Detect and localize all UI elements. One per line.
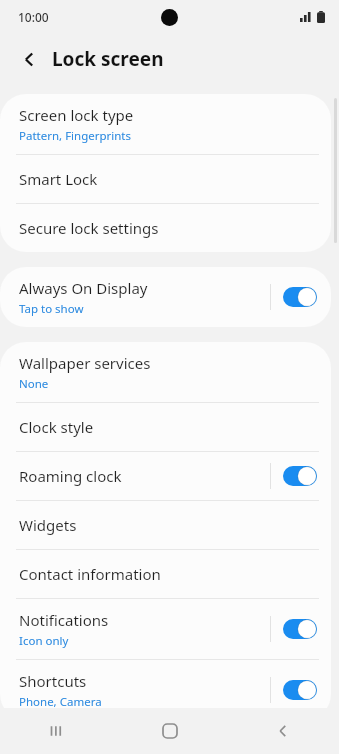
staticText: Pattern, Fingerprints	[19, 128, 132, 144]
button[interactable]: Notifications	[0, 599, 331, 659]
staticText: Smart Lock	[19, 169, 98, 189]
button[interactable]: Always On Display	[0, 267, 331, 327]
staticText: Shortcuts	[19, 671, 87, 691]
button[interactable]: Wallpaper services	[0, 342, 331, 402]
staticText: Clock style	[19, 417, 94, 437]
staticText: Phone, Camera	[19, 694, 102, 710]
staticText: Roaming clock	[19, 466, 122, 486]
button[interactable]: Toggle setting	[283, 287, 317, 307]
button[interactable]: Widgets	[0, 501, 331, 549]
button[interactable]: Secure lock settings	[0, 204, 331, 252]
button[interactable]: Shortcuts	[0, 660, 331, 720]
button[interactable]: Toggle setting	[283, 466, 317, 486]
button[interactable]: Recent apps	[0, 708, 113, 754]
button[interactable]: Contact information	[0, 550, 331, 598]
button[interactable]: Back	[12, 42, 46, 76]
staticText: Secure lock settings	[19, 218, 159, 238]
button[interactable]: Toggle setting	[283, 619, 317, 639]
staticText: Wallpaper services	[19, 353, 151, 373]
staticText: Contact information	[19, 564, 161, 584]
staticText: Lock screen	[52, 46, 164, 72]
staticText: Notifications	[19, 610, 109, 630]
button[interactable]: Clock style	[0, 403, 331, 451]
button[interactable]: Screen lock type	[0, 94, 331, 154]
staticText: Widgets	[19, 515, 77, 535]
button[interactable]: Home	[113, 708, 226, 754]
staticText: Tap to show	[19, 301, 84, 317]
button[interactable]: Roaming clock	[0, 452, 331, 500]
staticText: Always On Display	[19, 278, 148, 298]
staticText: Icon only	[19, 633, 69, 649]
button[interactable]: Smart Lock	[0, 155, 331, 203]
button[interactable]: Toggle setting	[283, 680, 317, 700]
staticText: 10:00	[18, 9, 49, 25]
button[interactable]: Back	[226, 708, 339, 754]
staticText: Screen lock type	[19, 105, 134, 125]
staticText: None	[19, 376, 49, 392]
